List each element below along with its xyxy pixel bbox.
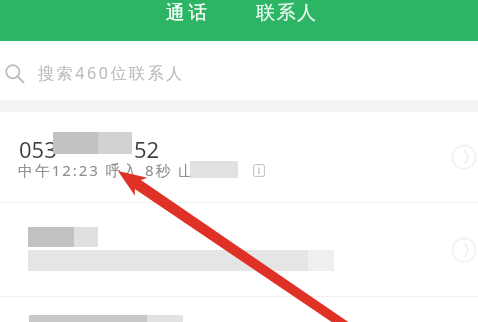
button[interactable]: Call details — [444, 137, 478, 177]
staticText: 053 — [19, 134, 57, 164]
button[interactable]: Call details — [444, 230, 478, 270]
staticText: 通话 — [164, 1, 209, 25]
button[interactable]: 053 — [0, 113, 478, 202]
button[interactable]: 搜索460位联系人 — [0, 41, 478, 99]
button[interactable]: 联系人 — [253, 0, 321, 27]
button[interactable]: 通话 — [161, 0, 212, 27]
button[interactable]: Call details — [0, 203, 478, 296]
staticText: 联系人 — [256, 1, 318, 25]
staticText: 中午12:23 呼入 8秒 山 — [18, 160, 196, 180]
staticText: 搜索460位联系人 — [38, 62, 185, 84]
staticText: 52 — [134, 134, 160, 164]
